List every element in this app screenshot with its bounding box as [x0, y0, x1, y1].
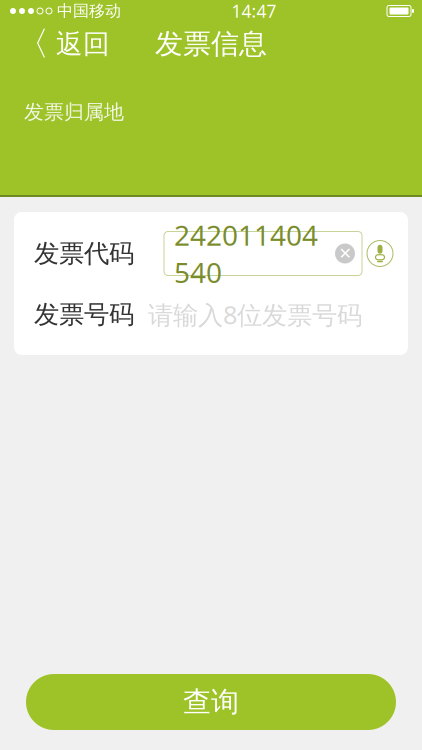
staticText: ✕ — [338, 244, 351, 263]
button[interactable]: Clear — [332, 240, 358, 266]
button[interactable]: 〈 — [0, 22, 126, 66]
staticText: 发票代码 — [34, 238, 134, 269]
staticText: 查询 — [183, 685, 239, 719]
staticText: 14:47 — [231, 0, 276, 22]
button[interactable]: 发票归属地 — [0, 90, 148, 134]
staticText: 〈 — [16, 23, 49, 64]
staticText: 242011404540 — [174, 216, 318, 291]
staticText: 中国移动 — [57, 1, 121, 21]
staticText: 请输入8位发票号码 — [148, 298, 362, 331]
staticText: 发票信息 — [155, 27, 267, 61]
staticText: 发票号码 — [34, 299, 134, 330]
staticText: 发票归属地 — [24, 100, 124, 124]
button[interactable]: Voice input — [362, 231, 398, 275]
button[interactable]: 发票号码 — [24, 284, 398, 344]
staticText: 返回 — [56, 28, 110, 60]
button[interactable]: 查询 — [26, 674, 396, 730]
